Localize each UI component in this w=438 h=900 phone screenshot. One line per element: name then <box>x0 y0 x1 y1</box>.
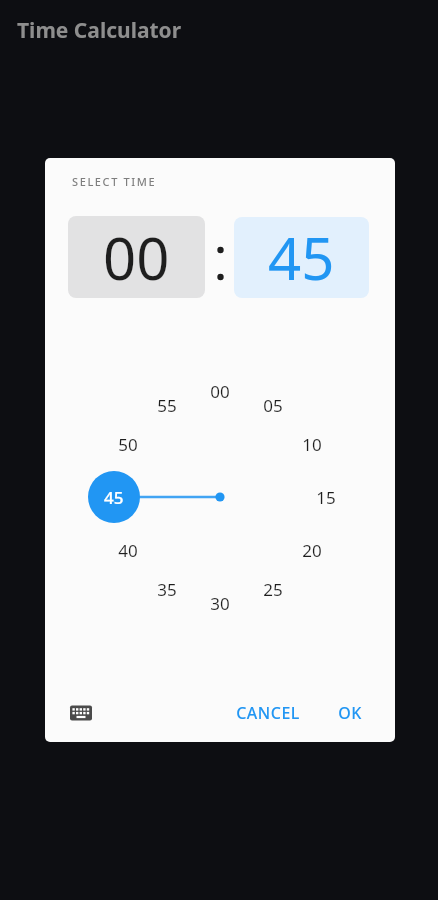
button[interactable]: 15 <box>306 485 346 509</box>
button[interactable]: 25 <box>253 577 293 601</box>
staticText: 55 <box>157 394 177 417</box>
staticText: 15 <box>316 486 336 509</box>
button[interactable]: 35 <box>147 577 187 601</box>
button[interactable] <box>66 698 96 728</box>
button[interactable]: CANCEL <box>223 693 313 733</box>
staticText: OK <box>338 702 362 724</box>
button[interactable]: 45 <box>234 217 369 298</box>
staticText: 20 <box>302 539 322 562</box>
button[interactable]: 20 <box>292 538 332 562</box>
staticText: 00 <box>103 218 170 297</box>
button[interactable]: 40 <box>108 538 148 562</box>
button[interactable]: 30 <box>200 591 240 615</box>
staticText: 40 <box>118 539 138 562</box>
staticText: 45 <box>268 218 335 297</box>
staticText: 30 <box>210 592 230 615</box>
staticText: 10 <box>302 433 322 456</box>
button[interactable]: 05 <box>253 393 293 417</box>
button[interactable]: 45 <box>88 471 140 523</box>
staticText: 50 <box>118 433 138 456</box>
staticText: Time Calculator <box>17 16 182 45</box>
button[interactable]: 10 <box>292 432 332 456</box>
staticText: 00 <box>210 380 230 403</box>
staticText: 25 <box>263 578 283 601</box>
button[interactable]: 55 <box>147 393 187 417</box>
button[interactable]: 50 <box>108 432 148 456</box>
button[interactable]: 00 <box>68 216 205 298</box>
staticText: SELECT TIME <box>72 174 157 189</box>
staticText: 35 <box>157 578 177 601</box>
staticText: 45 <box>104 486 124 509</box>
staticText: 05 <box>263 394 283 417</box>
button[interactable]: OK <box>320 693 380 733</box>
button[interactable]: 00 <box>200 379 240 403</box>
staticText: CANCEL <box>236 702 300 724</box>
